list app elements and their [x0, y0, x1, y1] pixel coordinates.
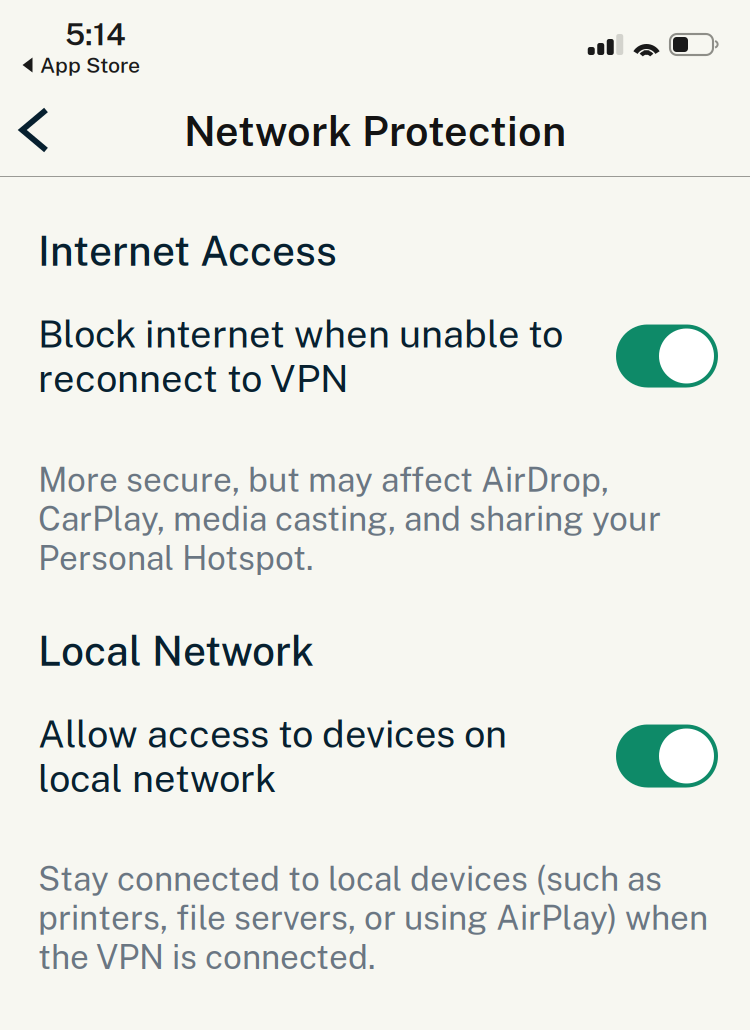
button[interactable]: Block internet when unable to reconnect … — [38, 316, 718, 396]
staticText: Local Network — [38, 627, 314, 675]
button[interactable]: App Store — [0, 0, 140, 77]
staticText: More secure, but may affect AirDrop, Car… — [38, 460, 661, 577]
staticText: Block internet when unable to reconnect … — [38, 311, 563, 401]
staticText: Stay connected to local devices (such as… — [38, 859, 708, 976]
button[interactable]: Back — [0, 0, 68, 168]
staticText: 5:14 — [65, 16, 126, 52]
staticText: Network Protection — [184, 107, 566, 155]
staticText: Internet Access — [38, 227, 337, 275]
button[interactable]: Allow access to devices on local network — [38, 716, 718, 796]
staticText: Allow access to devices on local network — [38, 711, 507, 801]
staticText: App Store — [40, 52, 140, 78]
